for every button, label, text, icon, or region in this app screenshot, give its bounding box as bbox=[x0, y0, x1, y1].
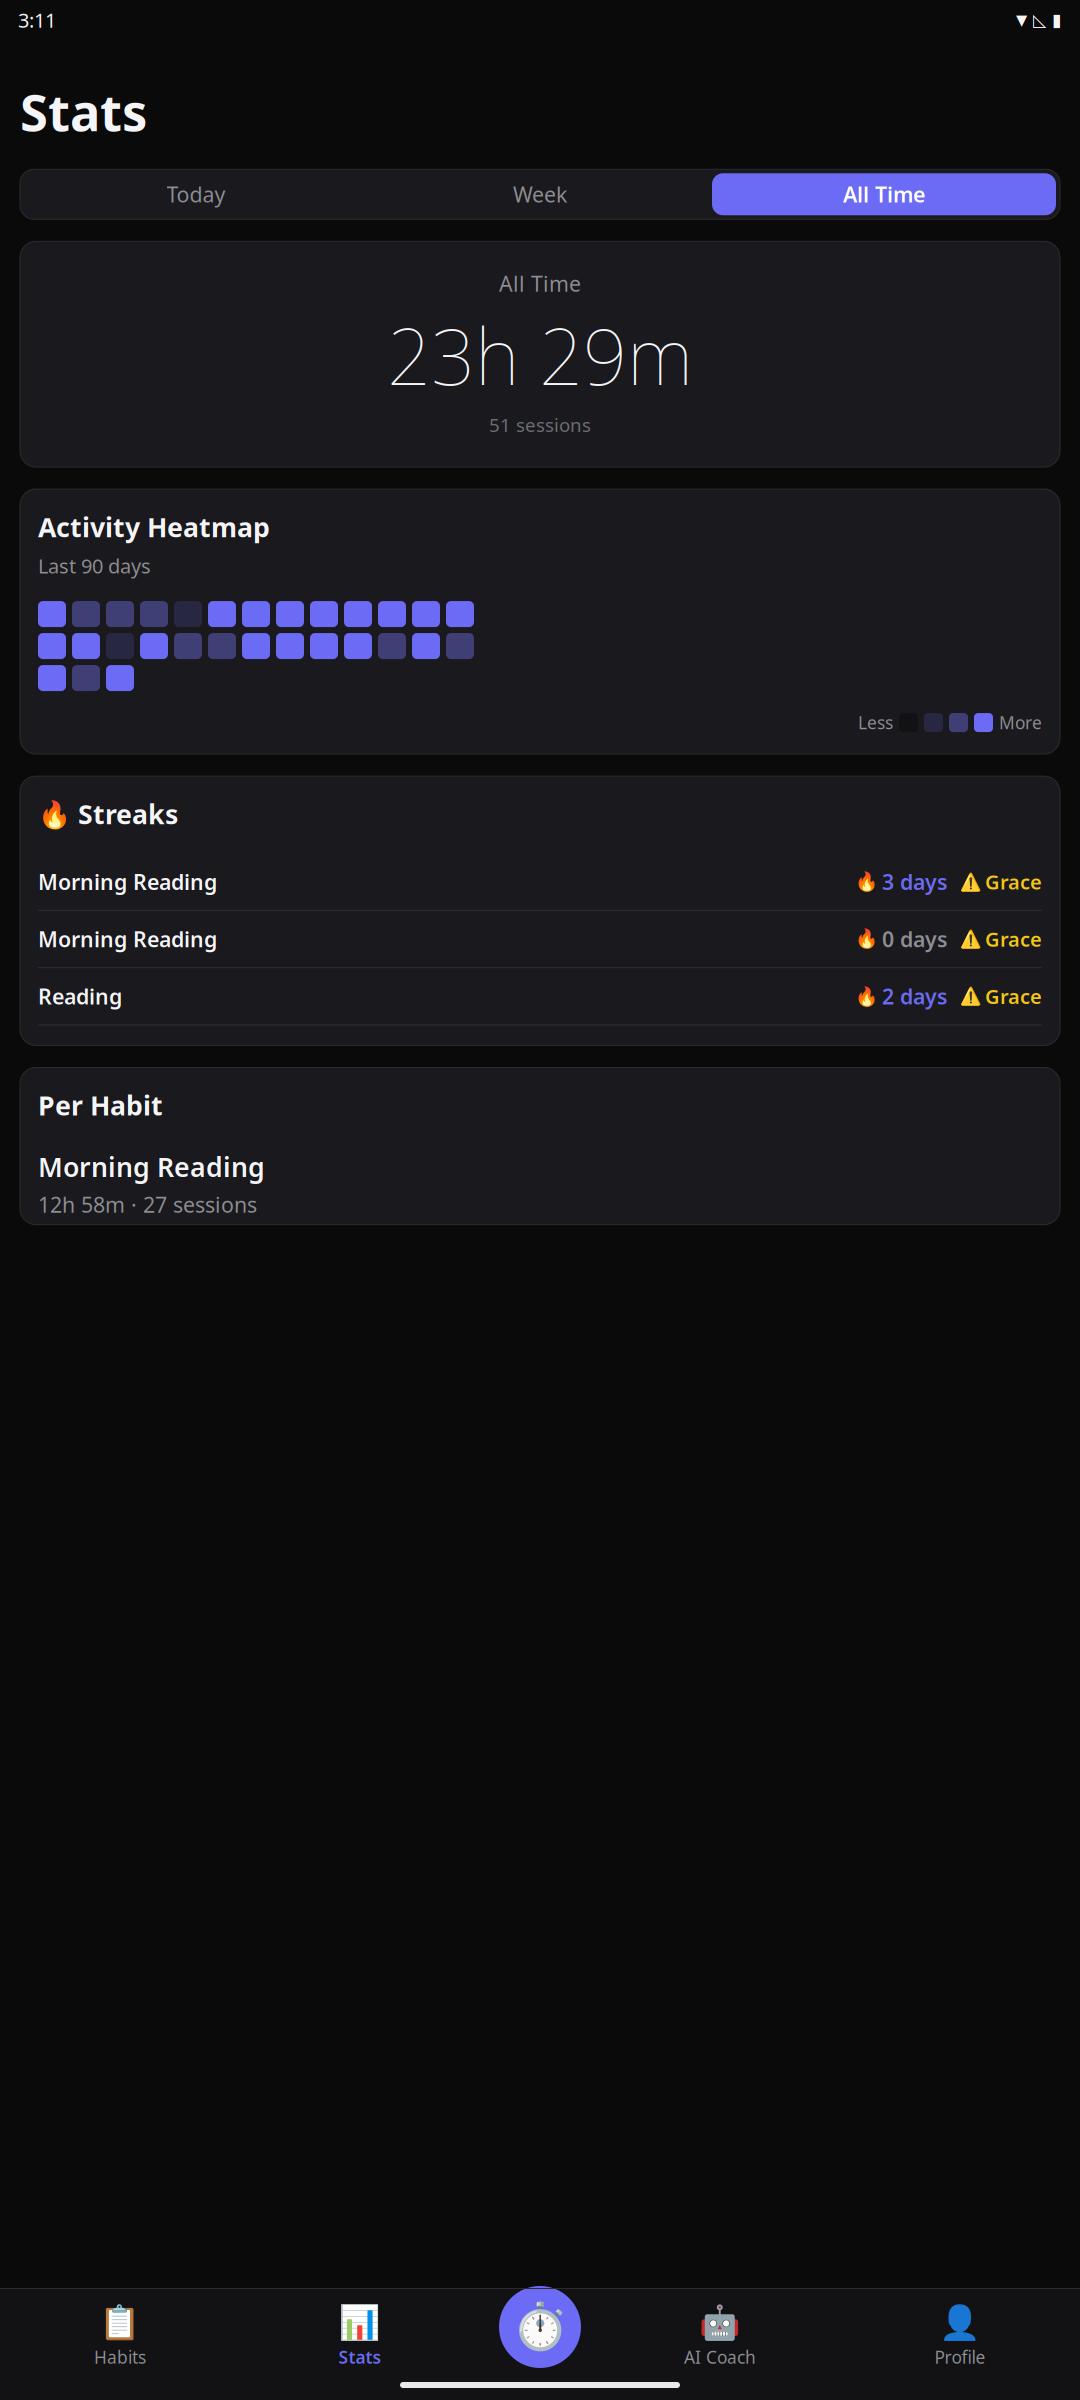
staticText: ▮ bbox=[1052, 10, 1062, 30]
staticText: 👤 bbox=[939, 2303, 981, 2341]
staticText: 0 days bbox=[882, 925, 948, 953]
staticText: 3:11 bbox=[18, 7, 56, 33]
button[interactable]: 🤖 bbox=[600, 2303, 840, 2368]
staticText: Less bbox=[858, 711, 893, 734]
staticText: 📋 bbox=[99, 2303, 141, 2341]
staticText: Stats bbox=[20, 78, 147, 145]
staticText: 🔥 bbox=[855, 986, 878, 1007]
button[interactable]: 📊 bbox=[240, 2303, 480, 2368]
button[interactable]: Week bbox=[368, 173, 712, 215]
staticText: Morning Reading bbox=[38, 1149, 265, 1184]
staticText: Last 90 days bbox=[38, 552, 151, 579]
staticText: Grace bbox=[985, 983, 1042, 1010]
staticText: 🔥 bbox=[855, 928, 878, 950]
staticText: All Time bbox=[499, 269, 581, 298]
staticText: Grace bbox=[985, 926, 1042, 952]
staticText: ▼ bbox=[1016, 12, 1027, 28]
staticText: 🔥 Streaks bbox=[38, 796, 178, 831]
staticText: 2 days bbox=[882, 982, 948, 1010]
staticText: Profile bbox=[934, 2345, 985, 2368]
button[interactable]: Morning Reading bbox=[38, 853, 1042, 910]
staticText: Morning Reading bbox=[38, 867, 217, 896]
staticText: ⚠️ bbox=[960, 986, 982, 1006]
staticText: ⚠️ bbox=[960, 929, 982, 949]
staticText: Morning Reading bbox=[38, 925, 217, 953]
staticText: All Time bbox=[843, 180, 925, 208]
staticText: 📊 bbox=[339, 2303, 381, 2341]
staticText: Week bbox=[513, 180, 567, 208]
staticText: ⚠️ bbox=[960, 872, 982, 892]
staticText: 🔥 bbox=[855, 871, 878, 892]
button[interactable]: All Time bbox=[712, 173, 1056, 215]
button[interactable]: 👤 bbox=[840, 2303, 1080, 2368]
staticText: 🤖 bbox=[699, 2303, 741, 2341]
staticText: Activity Heatmap bbox=[38, 509, 270, 544]
staticText: 23h 29m bbox=[387, 304, 693, 406]
staticText: Reading bbox=[38, 982, 122, 1010]
button[interactable]: Today bbox=[24, 173, 368, 215]
staticText: 51 sessions bbox=[489, 412, 591, 437]
staticText: More bbox=[999, 711, 1042, 734]
staticText: ◺ bbox=[1033, 10, 1046, 30]
staticText: 12h 58m · 27 sessions bbox=[38, 1190, 257, 1219]
staticText: AI Coach bbox=[684, 2345, 756, 2368]
staticText: ⏱️ bbox=[512, 2301, 568, 2353]
staticText: Per Habit bbox=[38, 1087, 163, 1123]
button[interactable]: Morning Reading bbox=[38, 911, 1042, 967]
staticText: Habits bbox=[94, 2345, 146, 2368]
button[interactable]: Start timer bbox=[499, 2286, 581, 2368]
button[interactable]: Reading bbox=[38, 968, 1042, 1024]
staticText: 3 days bbox=[882, 867, 948, 896]
staticText: Today bbox=[166, 180, 225, 208]
staticText: Grace bbox=[985, 868, 1042, 895]
staticText: Stats bbox=[338, 2345, 381, 2368]
button[interactable]: 📋 bbox=[0, 2303, 240, 2368]
